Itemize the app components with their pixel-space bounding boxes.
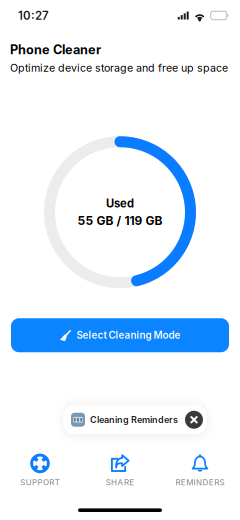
staticText: Select Cleaning Mode	[76, 329, 180, 341]
staticText: 10:27	[18, 9, 49, 22]
staticText: REMINDERS	[175, 477, 225, 487]
staticText: Used	[106, 197, 134, 210]
staticText: Cleaning Reminders	[90, 414, 178, 425]
button[interactable]: SUPPORT	[0, 451, 80, 489]
staticText: 55 GB / 119 GB	[77, 213, 162, 228]
staticText: Optimize device storage and free up spac…	[10, 61, 228, 74]
button[interactable]: REMINDERS	[160, 451, 240, 489]
staticText: Phone Cleaner	[10, 42, 101, 57]
button[interactable]: Select Cleaning Mode	[11, 318, 229, 352]
staticText: SUPPORT	[20, 477, 60, 487]
staticText: SHARE	[106, 477, 134, 487]
button[interactable]: SHARE	[80, 451, 160, 489]
button[interactable]: Cleaning Reminders	[63, 405, 207, 434]
